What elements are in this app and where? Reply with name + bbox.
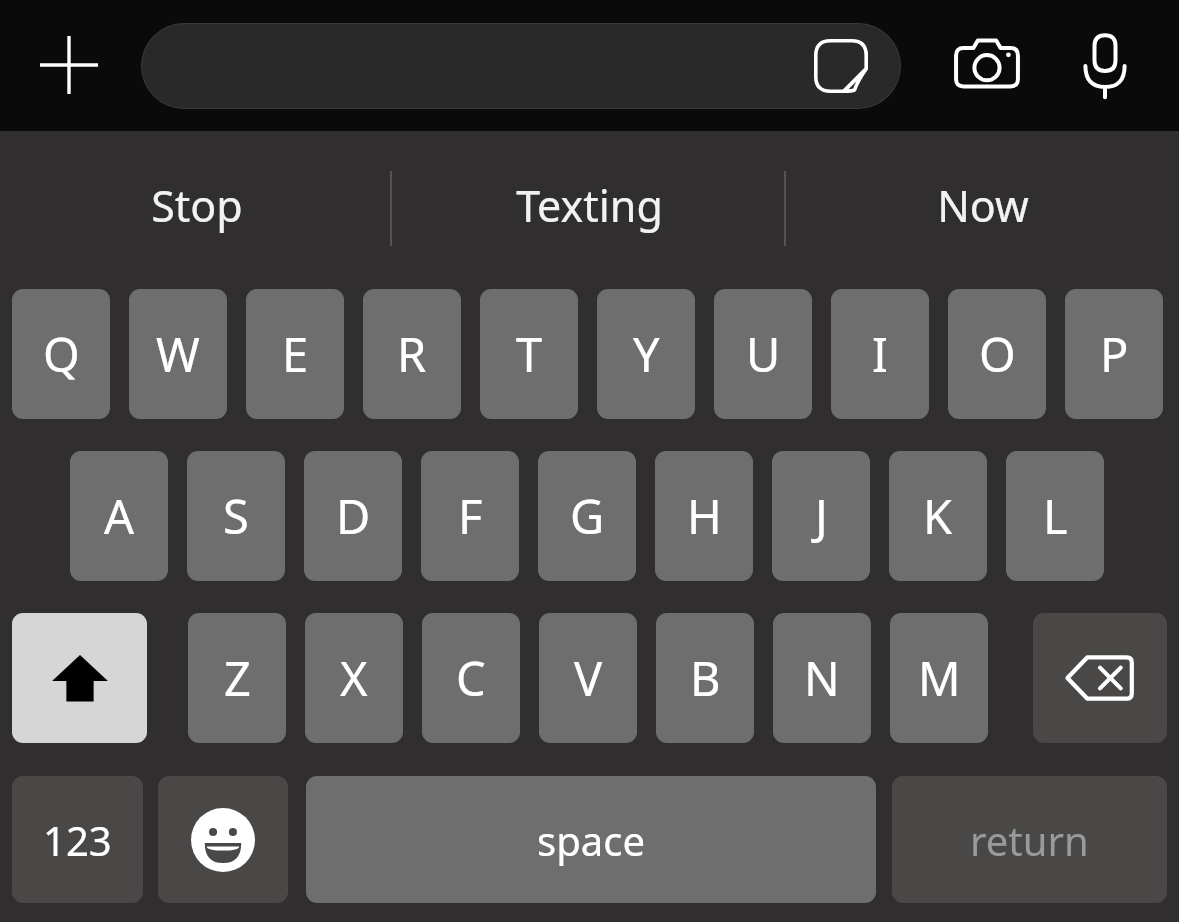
button[interactable]: W <box>129 289 227 419</box>
button[interactable]: I <box>831 289 929 419</box>
button[interactable]: C <box>422 613 520 743</box>
button[interactable]: Now <box>786 131 1179 280</box>
button[interactable]: H <box>655 451 753 581</box>
button[interactable]: Message field <box>141 23 901 109</box>
staticText: G <box>570 484 605 548</box>
button[interactable]: Y <box>597 289 695 419</box>
staticText: L <box>1043 484 1068 548</box>
button[interactable]: E <box>246 289 344 419</box>
staticText: 123 <box>43 813 112 867</box>
staticText: I <box>872 322 888 386</box>
button[interactable]: L <box>1006 451 1104 581</box>
staticText: F <box>458 484 483 548</box>
button[interactable]: U <box>714 289 812 419</box>
button[interactable]: T <box>480 289 578 419</box>
button[interactable]: Z <box>188 613 286 743</box>
staticText: R <box>397 322 427 386</box>
button[interactable]: R <box>363 289 461 419</box>
button[interactable]: Texting <box>393 131 786 280</box>
staticText: S <box>223 484 249 548</box>
button[interactable]: B <box>656 613 754 743</box>
staticText: K <box>923 484 953 548</box>
staticText: D <box>336 484 371 548</box>
button[interactable]: Stickers <box>809 34 873 98</box>
staticText: Z <box>224 646 251 710</box>
staticText: T <box>516 322 543 386</box>
staticText: space <box>537 813 645 867</box>
button[interactable]: J <box>772 451 870 581</box>
button[interactable]: Backspace <box>1033 613 1167 743</box>
staticText: U <box>746 322 781 386</box>
button[interactable]: P <box>1065 289 1163 419</box>
staticText: Y <box>633 322 660 386</box>
button[interactable]: M <box>890 613 988 743</box>
button[interactable]: V <box>539 613 637 743</box>
button[interactable]: N <box>773 613 871 743</box>
staticText: Now <box>937 176 1029 235</box>
staticText: E <box>282 322 309 386</box>
staticText: P <box>1100 322 1129 386</box>
staticText: Stop <box>151 176 243 235</box>
staticText: Texting <box>516 176 663 235</box>
staticText: M <box>918 646 961 710</box>
staticText: J <box>815 484 828 548</box>
button[interactable]: Microphone <box>1062 23 1148 109</box>
staticText: N <box>804 646 840 710</box>
button[interactable]: D <box>304 451 402 581</box>
staticText: Q <box>43 322 80 386</box>
button[interactable]: Stop <box>0 131 393 280</box>
button[interactable]: G <box>538 451 636 581</box>
button[interactable]: K <box>889 451 987 581</box>
staticText: return <box>970 813 1089 867</box>
staticText: W <box>156 322 200 386</box>
button[interactable]: return <box>892 776 1167 903</box>
staticText: C <box>456 646 486 710</box>
button[interactable]: 123 <box>12 776 143 903</box>
button[interactable]: X <box>305 613 403 743</box>
button[interactable]: space <box>306 776 876 903</box>
button[interactable]: Camera <box>944 23 1030 109</box>
button[interactable]: Emoji <box>158 776 288 903</box>
staticText: X <box>340 646 368 710</box>
button[interactable]: O <box>948 289 1046 419</box>
button[interactable]: F <box>421 451 519 581</box>
button[interactable]: Add attachment <box>26 22 112 108</box>
button[interactable]: Q <box>12 289 110 419</box>
staticText: V <box>574 646 603 710</box>
staticText: H <box>687 484 722 548</box>
button[interactable]: A <box>70 451 168 581</box>
staticText: B <box>690 646 721 710</box>
button[interactable]: S <box>187 451 285 581</box>
staticText: O <box>979 322 1016 386</box>
staticText: A <box>104 484 135 548</box>
button[interactable]: Shift <box>12 613 147 743</box>
